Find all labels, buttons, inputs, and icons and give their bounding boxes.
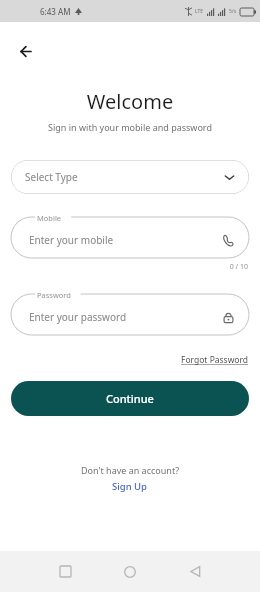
button[interactable]: Select Type: [11, 160, 249, 194]
staticText: Continue: [106, 391, 154, 406]
button[interactable]: Back: [172, 551, 218, 592]
button[interactable]: Enter your password: [11, 294, 249, 335]
button[interactable]: Sign Up: [106, 479, 154, 494]
staticText: LTE: [195, 8, 204, 15]
staticText: 6:43 AM: [40, 6, 71, 17]
staticText: Don't have an account?: [0, 464, 260, 476]
staticText: Select Type: [25, 170, 224, 184]
button[interactable]: Forgot Password: [179, 352, 251, 368]
staticText: Enter your password: [29, 310, 222, 324]
staticText: 5/s: [229, 8, 237, 15]
button[interactable]: Back: [6, 34, 40, 68]
staticText: 0 / 10: [0, 262, 248, 272]
staticText: Password: [37, 290, 71, 300]
button[interactable]: Enter your mobile: [11, 217, 249, 258]
staticText: Mobile: [37, 213, 62, 223]
button[interactable]: Recent apps: [42, 551, 88, 592]
staticText: Welcome: [0, 88, 260, 115]
staticText: Sign in with your mobile and password: [0, 121, 260, 133]
button[interactable]: Home: [107, 551, 153, 592]
staticText: Enter your mobile: [29, 233, 222, 247]
button[interactable]: Continue: [11, 381, 249, 416]
